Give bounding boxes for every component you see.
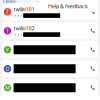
staticText: D (5, 65, 9, 72)
button[interactable]: M (2, 79, 98, 96)
button[interactable]: T (2, 3, 98, 20)
button[interactable]: T (2, 22, 98, 39)
staticText: T (6, 8, 9, 15)
staticText: Y (6, 46, 9, 53)
staticText: twilio102 (14, 25, 35, 32)
button[interactable]: D (2, 60, 98, 77)
staticText: twilio101 (14, 6, 35, 13)
staticText: M (5, 84, 10, 91)
button[interactable]: Y (2, 41, 98, 58)
button[interactable]: Help & feedback (39, 1, 98, 12)
staticText: Help & feedback (48, 3, 88, 10)
staticText: Older (3, 0, 16, 5)
staticText: T (6, 27, 9, 34)
